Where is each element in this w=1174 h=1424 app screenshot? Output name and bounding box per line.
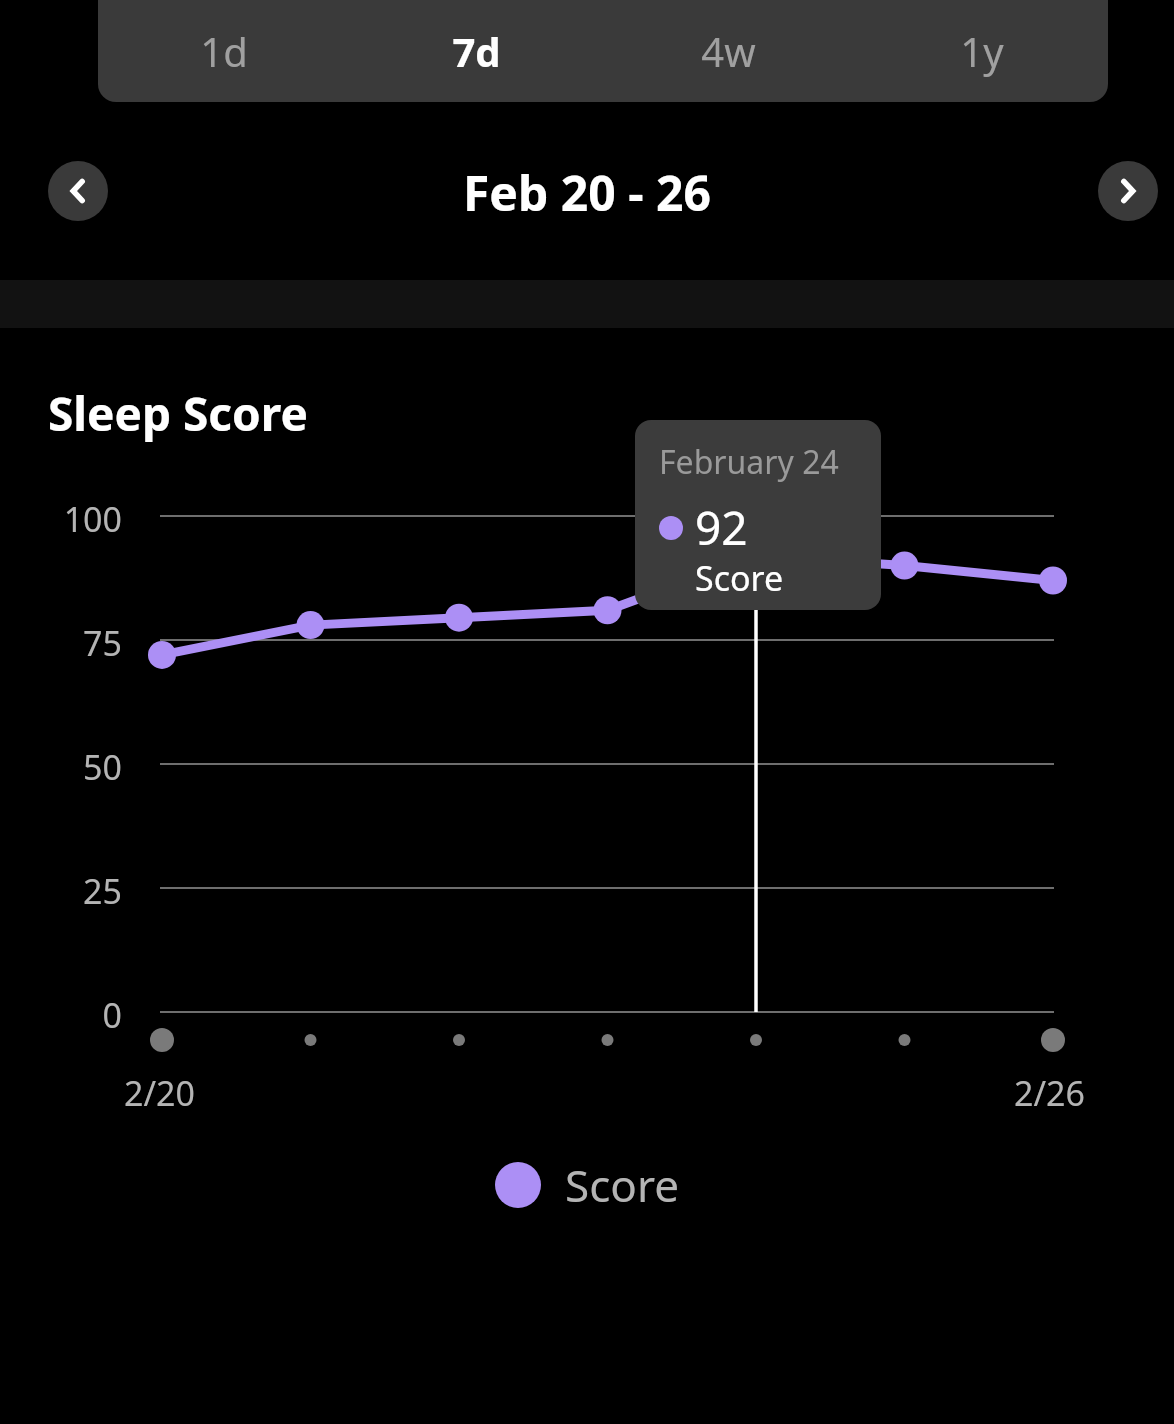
button[interactable]: February 24 [635,420,881,610]
button[interactable]: 7d [350,0,602,102]
staticText: February 24 [659,440,839,484]
button[interactable]: Previous week [48,161,108,221]
button[interactable]: Next week [1098,161,1158,221]
staticText: 1d [200,24,248,78]
staticText: Score [565,1155,680,1215]
staticText: 0 [0,992,122,1038]
staticText: 1y [960,24,1004,78]
staticText: 75 [0,620,122,666]
button[interactable]: 4w [602,0,855,102]
button[interactable]: Score [495,1155,680,1215]
staticText: Sleep Score [48,382,308,445]
button[interactable]: 1d [98,0,350,102]
staticText: 4w [701,24,756,78]
button[interactable]: 1y [855,0,1108,102]
staticText: 92 [695,496,748,559]
staticText: 7d [452,24,501,78]
staticText: 25 [0,868,122,914]
staticText: 2/20 [124,1070,195,1116]
staticText: 100 [0,496,122,542]
staticText: Feb 20 - 26 [463,160,711,222]
staticText: 2/26 [1014,1070,1085,1116]
staticText: 50 [0,744,122,790]
staticText: Score [695,555,784,601]
